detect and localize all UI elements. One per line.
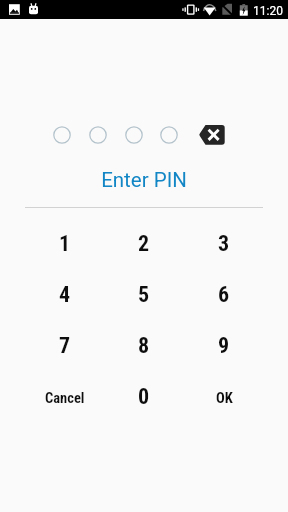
button[interactable]: 2 bbox=[104, 218, 184, 269]
staticText: 4 bbox=[59, 282, 71, 308]
staticText: OK bbox=[216, 390, 233, 407]
button[interactable]: OK bbox=[184, 371, 264, 422]
button[interactable]: 1 bbox=[25, 218, 105, 269]
staticText: 2 bbox=[138, 231, 150, 257]
staticText: 8 bbox=[138, 333, 150, 359]
staticText: 11:20 bbox=[253, 4, 283, 18]
staticText: 6 bbox=[218, 282, 230, 308]
button[interactable]: 5 bbox=[104, 269, 184, 320]
staticText: 0 bbox=[138, 384, 150, 410]
staticText: 1 bbox=[59, 231, 71, 257]
button[interactable]: 4 bbox=[25, 269, 105, 320]
staticText: Enter PIN bbox=[0, 168, 288, 192]
staticText: 9 bbox=[218, 333, 230, 359]
button[interactable]: 8 bbox=[104, 320, 184, 371]
staticText: 3 bbox=[218, 231, 230, 257]
button[interactable]: 0 bbox=[104, 371, 184, 422]
button[interactable]: Backspace bbox=[192, 119, 232, 151]
button[interactable]: 6 bbox=[184, 269, 264, 320]
staticText: 5 bbox=[138, 282, 150, 308]
button[interactable]: Cancel bbox=[25, 371, 105, 422]
staticText: Cancel bbox=[45, 390, 85, 407]
button[interactable]: 9 bbox=[184, 320, 264, 371]
button[interactable]: 3 bbox=[184, 218, 264, 269]
staticText: 7 bbox=[59, 333, 71, 359]
button[interactable]: 7 bbox=[25, 320, 105, 371]
